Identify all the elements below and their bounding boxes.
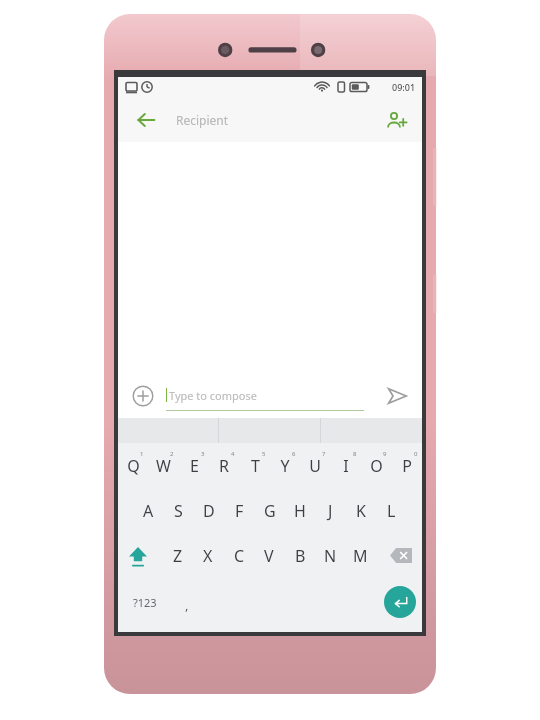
button[interactable]: A [133, 488, 163, 533]
staticText: T [251, 455, 260, 477]
staticText: Z [173, 545, 183, 567]
staticText: H [294, 500, 306, 522]
button[interactable]: G [255, 488, 285, 533]
button[interactable]: Send [378, 377, 416, 415]
button[interactable]: K [346, 488, 376, 533]
staticText: N [324, 545, 337, 567]
staticText: I [343, 455, 349, 477]
staticText: 2 [170, 450, 174, 458]
staticText: E [190, 455, 199, 477]
staticText: 1 [140, 450, 144, 458]
button[interactable]: I [331, 443, 361, 488]
button[interactable]: E [179, 443, 209, 488]
button[interactable]: . [376, 578, 402, 626]
button[interactable]: Type to compose [166, 381, 364, 411]
button[interactable]: P [392, 443, 422, 488]
staticText: 5 [262, 450, 266, 458]
button[interactable]: M [345, 533, 375, 578]
button[interactable]: Back [124, 97, 168, 142]
staticText: Recipient [176, 112, 229, 128]
staticText: S [174, 500, 183, 522]
button[interactable]: C [224, 533, 254, 578]
staticText: C [234, 545, 245, 567]
button[interactable]: B [285, 533, 315, 578]
staticText: B [295, 545, 306, 567]
staticText: 0 [414, 450, 418, 458]
staticText: K [356, 500, 366, 522]
button[interactable]: , [170, 578, 204, 626]
staticText: V [264, 545, 274, 567]
staticText: R [219, 455, 229, 477]
staticText: . [387, 596, 391, 614]
staticText: 9 [383, 450, 387, 458]
staticText: P [402, 455, 412, 477]
button[interactable]: W [148, 443, 178, 488]
button[interactable]: U [300, 443, 330, 488]
button[interactable]: ?123 [122, 578, 168, 626]
button[interactable]: Z [163, 533, 193, 578]
staticText: ?123 [133, 595, 157, 610]
staticText: J [328, 500, 333, 522]
staticText: F [235, 500, 244, 522]
staticText: G [264, 500, 276, 522]
button[interactable]: R [209, 443, 239, 488]
button[interactable]: Q [118, 443, 148, 488]
staticText: 3 [201, 450, 205, 458]
button[interactable]: L [376, 488, 406, 533]
staticText: 4 [231, 450, 235, 458]
staticText: W [156, 455, 171, 477]
button[interactable]: S [163, 488, 193, 533]
staticText: 8 [353, 450, 357, 458]
button[interactable]: D [194, 488, 224, 533]
staticText: Type to compose [169, 388, 257, 403]
staticText: U [309, 455, 321, 477]
staticText: M [353, 545, 368, 567]
staticText: D [203, 500, 215, 522]
staticText: 6 [292, 450, 296, 458]
button[interactable]: T [240, 443, 270, 488]
staticText: X [203, 545, 213, 567]
staticText: L [387, 500, 396, 522]
button[interactable]: Y [270, 443, 300, 488]
staticText: Y [280, 455, 290, 477]
staticText: 09:01 [392, 81, 416, 93]
button[interactable]: V [254, 533, 284, 578]
staticText: O [370, 455, 383, 477]
staticText: A [143, 500, 154, 522]
button[interactable]: N [315, 533, 345, 578]
button[interactable]: X [193, 533, 223, 578]
button[interactable]: J [315, 488, 345, 533]
button[interactable]: Shift [118, 533, 158, 578]
staticText: , [185, 596, 189, 614]
button[interactable]: F [224, 488, 254, 533]
staticText: Q [127, 455, 140, 477]
button[interactable]: O [361, 443, 391, 488]
button[interactable]: Backspace [380, 533, 422, 578]
button[interactable]: Enter [384, 586, 416, 618]
staticText: 7 [322, 450, 326, 458]
button[interactable]: H [285, 488, 315, 533]
button[interactable]: Add attachment [126, 379, 160, 413]
button[interactable]: Add recipient [374, 98, 418, 142]
